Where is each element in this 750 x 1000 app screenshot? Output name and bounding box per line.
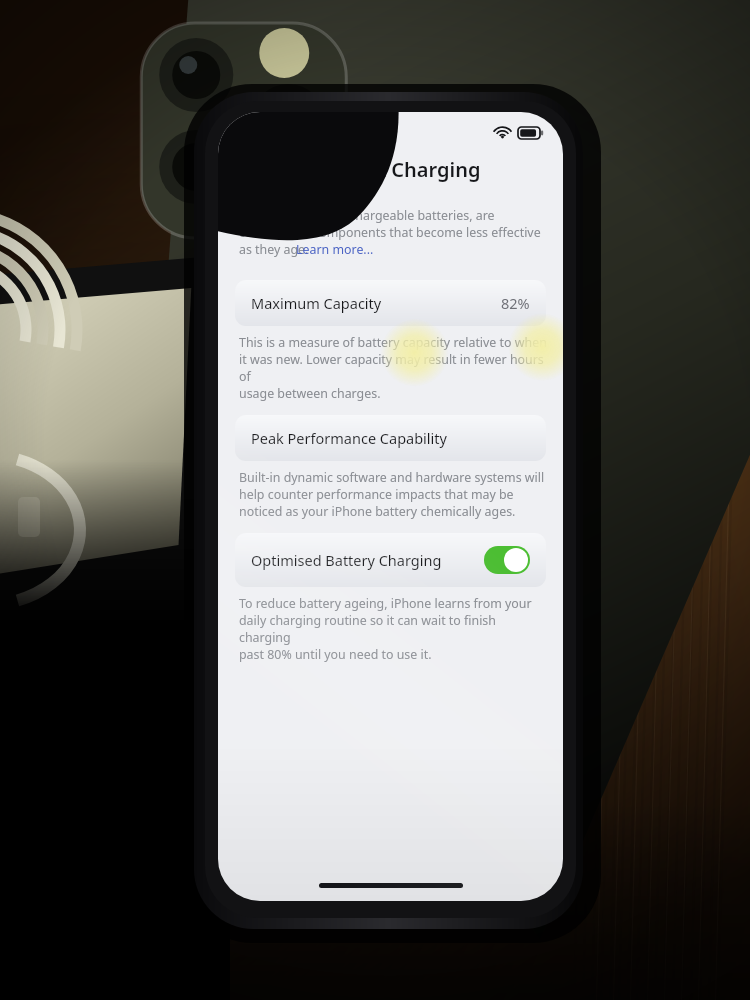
button[interactable]: Peak Performance Capability [235, 415, 546, 461]
staticText: Built-in dynamic software and hardware s… [239, 469, 545, 520]
staticText: To reduce battery ageing, iPhone learns … [239, 595, 549, 663]
button[interactable]: Maximum Capacity [235, 280, 546, 326]
staticText: This is a measure of battery capacity re… [239, 334, 549, 402]
staticText: Peak Performance Capability [251, 428, 447, 448]
staticText: Batteries, like all rechargeable batteri… [239, 207, 541, 258]
staticText: Health & Charging [301, 156, 481, 183]
staticText: Learn more... [296, 241, 374, 258]
staticText: 82% [501, 293, 530, 313]
button[interactable]: Learn more... [296, 241, 374, 258]
staticText: Optimised Battery Charging [251, 550, 442, 570]
button[interactable]: Optimised Battery Charging, on [484, 546, 530, 574]
button[interactable]: Optimised Battery Charging [235, 533, 546, 587]
staticText: Maximum Capacity [251, 293, 382, 313]
